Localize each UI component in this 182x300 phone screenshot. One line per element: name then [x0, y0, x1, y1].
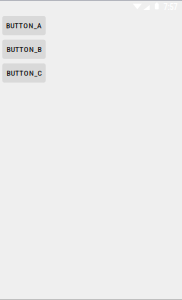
staticText: BUTTON_C: [6, 68, 42, 78]
staticText: BUTTON_B: [6, 45, 42, 54]
button[interactable]: BUTTON_B: [2, 40, 46, 59]
staticText: 7:57: [163, 2, 177, 12]
button[interactable]: BUTTON_A: [2, 16, 46, 35]
staticText: BUTTON_A: [6, 21, 42, 30]
button[interactable]: BUTTON_C: [2, 63, 46, 83]
